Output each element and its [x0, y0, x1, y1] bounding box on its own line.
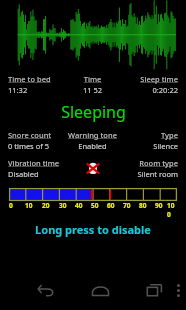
staticText: 70	[123, 201, 131, 210]
button[interactable]: Snore detection disabled	[64, 158, 121, 178]
staticText: 90	[155, 201, 163, 210]
button[interactable]: Recent apps	[138, 274, 170, 306]
staticText: Time to bed	[8, 74, 64, 84]
staticText: 40	[75, 201, 83, 210]
staticText: Vibration time	[8, 158, 64, 168]
staticText: Long press to disable	[35, 222, 151, 237]
staticText: Enabled	[64, 141, 121, 151]
staticText: Sleep time	[121, 74, 178, 84]
staticText: Silent room	[121, 169, 178, 179]
staticText: 0:20:22	[121, 85, 178, 95]
staticText: 80	[139, 201, 147, 210]
button[interactable]: Home	[84, 274, 116, 306]
staticText: 11:32	[8, 85, 64, 95]
staticText: Sleeping	[61, 101, 126, 123]
staticText: 20	[42, 201, 50, 210]
staticText: Type	[121, 130, 178, 140]
staticText: 60	[107, 201, 115, 210]
staticText: 0	[9, 201, 13, 210]
staticText: 50	[91, 201, 99, 210]
button[interactable]: 0	[9, 188, 177, 219]
staticText: 11 52	[64, 85, 121, 95]
staticText: Snore count	[8, 130, 64, 140]
staticText: 0 times of 5	[8, 141, 64, 151]
staticText: Disabled	[8, 169, 64, 179]
staticText: 10	[25, 201, 33, 210]
button[interactable]: Long press to disable	[0, 222, 186, 237]
staticText: Time	[64, 74, 121, 84]
staticText: Silence	[121, 141, 178, 151]
button[interactable]: Back	[30, 274, 62, 306]
staticText: 30	[59, 201, 67, 210]
staticText: Room type	[121, 158, 178, 168]
staticText: 100	[167, 201, 177, 219]
button[interactable]: More options	[170, 277, 186, 303]
staticText: Warning tone	[64, 130, 121, 140]
